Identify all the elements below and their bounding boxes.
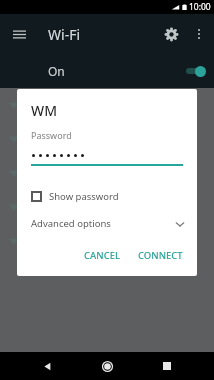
staticText: Wi-Fi [48,25,81,44]
staticText: Show password [49,190,119,203]
staticText: CONNECT [138,249,183,262]
button[interactable]: Navigation menu [8,23,30,45]
button[interactable]: Advanced options [17,215,197,232]
staticText: 10:00 [189,1,211,13]
button[interactable]: CONNECT [132,245,189,266]
button[interactable] [0,224,214,258]
button[interactable]: Home [94,353,120,379]
button[interactable]: Recent apps [154,353,180,379]
button[interactable]: Wi-Fi settings [160,23,182,45]
button[interactable]: CANCEL [78,245,127,266]
button[interactable]: Show password [17,188,197,205]
button[interactable]: On [0,54,214,88]
button[interactable] [0,156,214,190]
button[interactable]: More options [188,23,210,45]
staticText: CANCEL [84,249,121,262]
staticText: WM [31,101,58,120]
button[interactable] [0,122,214,156]
staticText: On [48,63,65,79]
button[interactable]: Back [34,353,60,379]
button[interactable] [0,190,214,224]
button[interactable] [0,88,214,122]
staticText: Password [31,129,72,141]
staticText: Advanced options [31,217,111,230]
